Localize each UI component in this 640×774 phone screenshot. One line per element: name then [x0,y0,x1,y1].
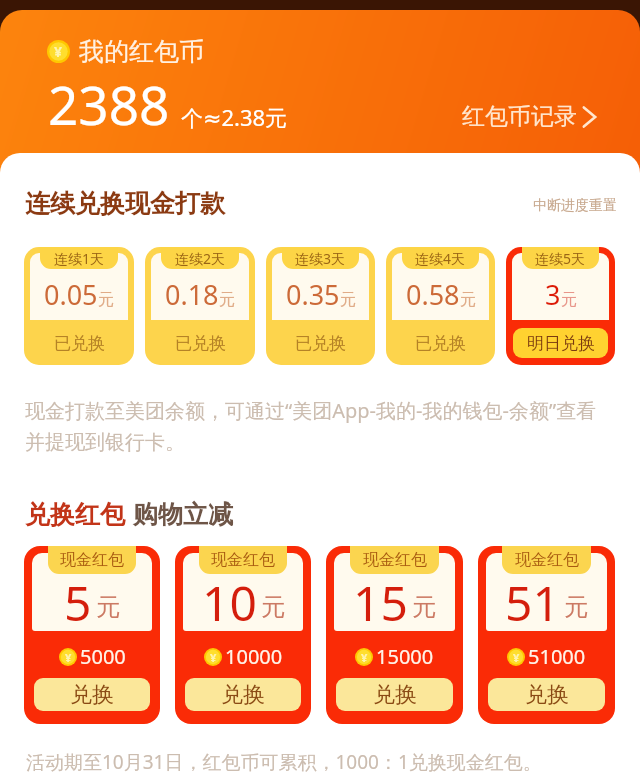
button[interactable]: 兑换 [34,678,150,711]
other: 红包币记录 [582,105,597,129]
staticText: 51000 [528,643,586,670]
staticText: 现金红包 [515,550,579,570]
staticText: 连续兑换现金打款 [25,188,225,219]
staticText: 元 [561,290,577,310]
staticText: 兑换 [373,681,417,709]
staticText: 已兑换 [295,333,346,354]
staticText: 活动期至10月31日，红包币可累积，1000：1兑换现金红包。 [26,749,542,774]
staticText: 元 [98,290,114,310]
staticText: 现金红包 [363,550,427,570]
staticText: 连续5天 [535,249,586,268]
staticText: 兑换 [70,681,114,709]
button[interactable]: 现金红包 [175,546,311,724]
staticText: ¥ [65,650,72,665]
button[interactable]: 连续4天 [386,247,495,365]
staticText: 3 [545,276,561,313]
button[interactable]: 红包币记录 [462,102,597,131]
staticText: 0.35 [286,276,340,313]
staticText: 现金打款至美团余额，可通过“美团App-我的-我的钱包-余额”查看 [25,397,597,424]
button[interactable]: 连续2天 [145,247,255,365]
button[interactable]: 现金红包 [478,546,615,724]
staticText: 兑换 [525,681,569,709]
staticText: 元 [564,592,588,622]
staticText: 连续4天 [415,249,466,268]
staticText: 15000 [376,643,434,670]
staticText: ¥ [54,42,63,61]
staticText: 0.05 [44,276,98,313]
staticText: 并提现到银行卡。 [25,430,185,455]
button[interactable]: 兑换 [336,678,453,711]
staticText: 元 [261,592,285,622]
staticText: ¥ [210,650,217,665]
staticText: 连续3天 [295,249,346,268]
staticText: 已兑换 [415,333,466,354]
staticText: 10000 [225,643,283,670]
staticText: 10 [202,570,257,627]
button[interactable]: 连续3天 [266,247,375,365]
staticText: 个≈2.38元 [181,102,288,132]
staticText: 现金红包 [211,550,275,570]
staticText: 兑换红包 [25,499,125,530]
staticText: 15 [353,570,408,627]
staticText: 现金红包 [60,550,124,570]
staticText: 5000 [80,643,126,670]
staticText: 元 [340,290,356,310]
staticText: 中断进度重置 [533,197,617,215]
staticText: 元 [412,592,436,622]
staticText: 已兑换 [175,333,226,354]
staticText: 兑换 [221,681,265,709]
staticText: 我的红包币 [79,36,204,67]
staticText: 已兑换 [54,333,105,354]
staticText: 连续2天 [175,249,226,268]
staticText: 5 [64,570,92,627]
button[interactable]: 连续5天 [506,247,615,365]
staticText: 0.18 [165,276,219,313]
button[interactable]: 兑换 [185,678,301,711]
staticText: 2388 [48,68,170,140]
staticText: 明日兑换 [527,333,595,354]
staticText: 购物立减 [133,499,233,530]
staticText: 元 [219,290,235,310]
staticText: ¥ [513,650,520,665]
button[interactable]: 兑换 [488,678,605,711]
staticText: 51 [505,570,560,627]
button[interactable]: 明日兑换 [513,328,608,358]
staticText: 元 [96,592,120,622]
staticText: 0.58 [406,276,460,313]
staticText: 连续1天 [54,249,105,268]
staticText: 元 [460,290,476,310]
button[interactable]: 连续1天 [24,247,134,365]
button[interactable]: 现金红包 [326,546,463,724]
staticText: ¥ [361,650,368,665]
button[interactable]: 现金红包 [24,546,160,724]
staticText: 红包币记录 [462,102,577,131]
